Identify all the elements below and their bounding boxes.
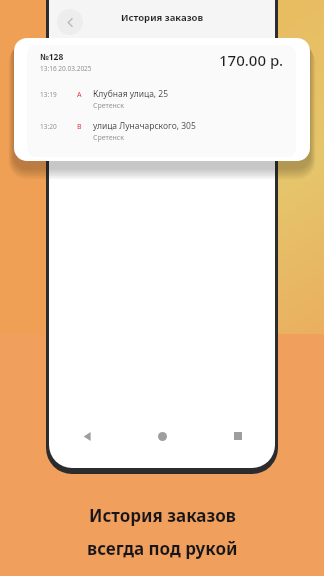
staticText: Сретенск <box>93 101 125 111</box>
staticText: B <box>77 122 82 132</box>
staticText: История заказов <box>89 504 236 527</box>
button[interactable]: 13:19 <box>40 88 296 111</box>
staticText: №128 <box>40 51 64 63</box>
button[interactable]: Back <box>49 418 125 454</box>
staticText: Клубная улица, 25 <box>93 88 169 100</box>
button[interactable]: Home <box>125 418 200 454</box>
staticText: всегда под рукой <box>87 537 238 560</box>
staticText: 13:20 <box>40 122 57 131</box>
staticText: История заказов <box>121 11 204 24</box>
button[interactable]: 13:20 <box>40 120 296 143</box>
staticText: 13:16 20.03.2025 <box>40 64 92 73</box>
button[interactable]: №128 <box>14 38 310 161</box>
button[interactable]: Back <box>57 9 83 35</box>
staticText: 170.00 р. <box>219 50 284 70</box>
staticText: улица Луначарского, 305 <box>93 120 196 132</box>
staticText: Сретенск <box>93 133 125 143</box>
staticText: A <box>77 90 82 100</box>
staticText: 13:19 <box>40 90 57 99</box>
button[interactable]: Recent apps <box>200 418 275 454</box>
